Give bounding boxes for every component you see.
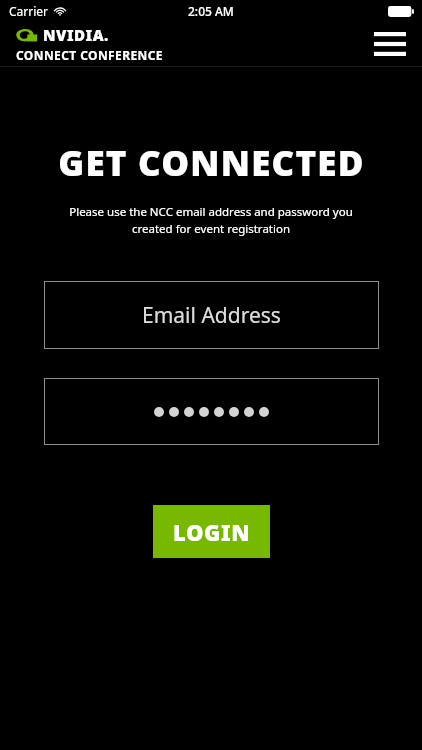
staticText: LOGIN [173,517,251,547]
staticText: CONNECT CONFERENCE [16,47,163,63]
staticText: Please use the NCC email address and pas… [60,204,362,236]
button[interactable]: Open menu [372,27,408,61]
staticText: Carrier [9,3,49,19]
staticText: GET CONNECTED [58,139,365,187]
staticText: NVIDIA. [43,25,109,45]
button[interactable]: NVIDIA. [16,25,163,63]
staticText: Email Address [142,301,281,330]
button[interactable]: Password [44,378,379,445]
button[interactable]: Email Address [44,281,379,349]
button[interactable]: LOGIN [153,505,270,558]
staticText: 2:05 AM [188,3,234,19]
